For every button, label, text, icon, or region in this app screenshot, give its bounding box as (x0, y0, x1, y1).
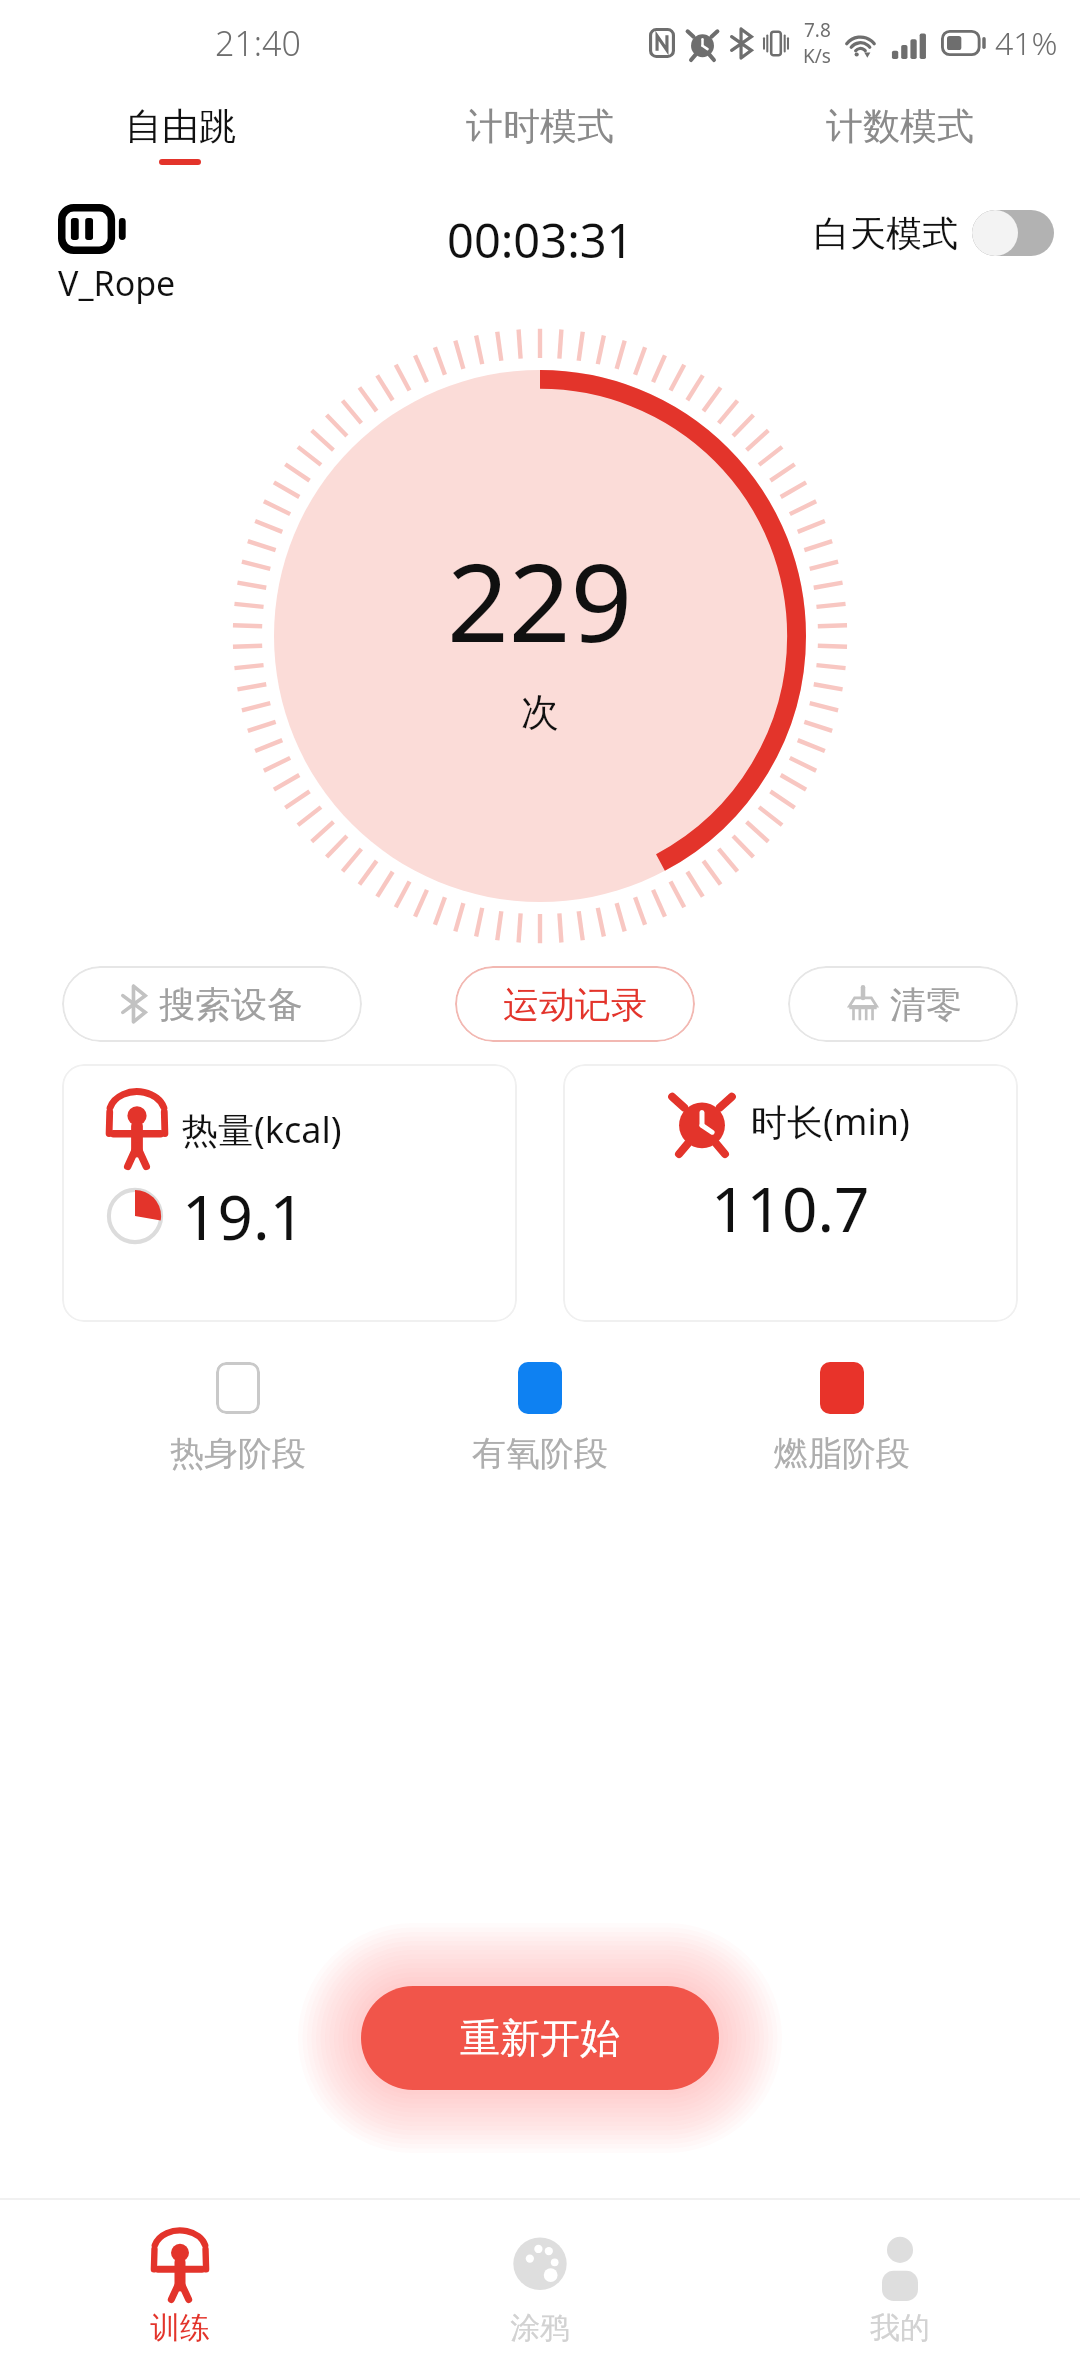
staticText: 燃脂阶段 (774, 1432, 910, 1475)
staticText: 清零 (890, 982, 962, 1027)
staticText: 计数模式 (826, 103, 974, 150)
staticText: V_Rope (58, 260, 176, 306)
staticText: 运动记录 (503, 982, 647, 1027)
staticText: 重新开始 (460, 2013, 620, 2063)
staticText: K/s (803, 43, 831, 69)
button[interactable]: 自由跳 (0, 86, 360, 182)
button[interactable]: 热身阶段 (170, 1362, 306, 1475)
staticText: 19.1 (182, 1174, 306, 1258)
button[interactable]: 计时模式 (360, 86, 720, 182)
button[interactable]: 搜索设备 (62, 966, 362, 1042)
staticText: 229 (447, 527, 633, 674)
staticText: 搜索设备 (159, 982, 303, 1027)
staticText: 白天模式 (814, 211, 958, 256)
staticText: 时长(min) (751, 1097, 910, 1146)
staticText: 计时模式 (466, 103, 614, 150)
button[interactable]: 运动记录 (455, 966, 695, 1042)
button[interactable]: 清零 (788, 966, 1018, 1042)
staticText: 热身阶段 (170, 1432, 306, 1475)
button[interactable]: 燃脂阶段 (774, 1362, 910, 1475)
button[interactable]: 热量(kcal) (62, 1064, 517, 1322)
button[interactable]: 有氧阶段 (472, 1362, 608, 1475)
staticText: 涂鸦 (510, 2309, 570, 2347)
staticText: 次 (521, 688, 559, 736)
button[interactable]: 涂鸦 (360, 2200, 720, 2376)
staticText: 训练 (150, 2309, 210, 2347)
staticText: 自由跳 (125, 103, 236, 150)
staticText: 21:40 (215, 20, 301, 66)
staticText: 7.8 (804, 17, 831, 43)
button[interactable]: 白天模式开关 (972, 210, 1054, 256)
button[interactable]: 时长(min) (563, 1064, 1018, 1322)
staticText: 有氧阶段 (472, 1432, 608, 1475)
button[interactable]: 计数模式 (720, 86, 1080, 182)
staticText: 110.7 (711, 1166, 870, 1250)
button[interactable]: 训练 (0, 2200, 360, 2376)
staticText: 我的 (870, 2309, 930, 2347)
button[interactable]: 我的 (720, 2200, 1080, 2376)
staticText: 41% (995, 21, 1058, 65)
staticText: 00:03:31 (447, 208, 634, 272)
button[interactable]: 重新开始 (361, 1986, 719, 2090)
staticText: 热量(kcal) (182, 1105, 342, 1154)
